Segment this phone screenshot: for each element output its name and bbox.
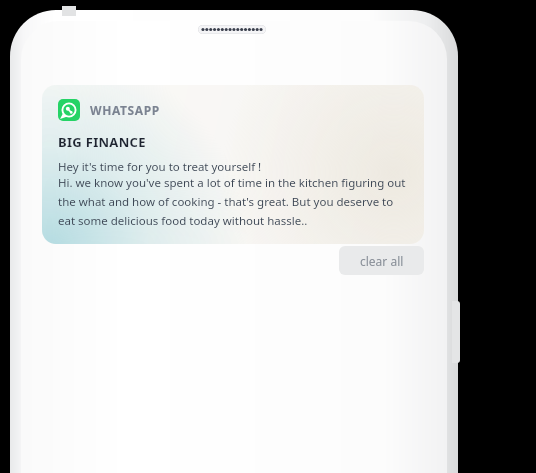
button[interactable]: clear all — [339, 246, 424, 275]
staticText: BIG FINANCE — [58, 133, 146, 151]
staticText: Hey it's time for you to treat yourself … — [58, 159, 262, 175]
staticText: Hi. we know you've spent a lot of time i… — [58, 175, 408, 228]
other: Power button — [452, 301, 460, 363]
staticText: WHATSAPP — [90, 102, 160, 118]
button[interactable]: WhatsApp — [42, 85, 424, 244]
staticText: clear all — [360, 253, 404, 269]
other: WhatsApp — [58, 99, 80, 121]
